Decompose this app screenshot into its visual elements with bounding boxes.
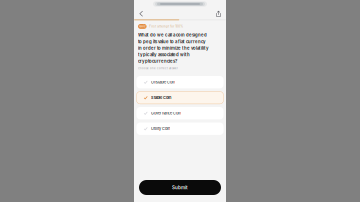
staticText: Utility Coin — [151, 126, 170, 131]
button[interactable]: Share — [215, 11, 222, 17]
staticText: Governance Coin — [151, 111, 181, 116]
button[interactable]: Submit — [139, 180, 221, 195]
button[interactable]: Governance Coin — [136, 107, 223, 119]
staticText: Quiz — [139, 25, 145, 28]
button[interactable]: Stable Coin — [136, 91, 223, 104]
staticText: Choose one correct answer — [138, 67, 178, 70]
staticText: Stable Coin — [151, 95, 171, 100]
staticText: Submit — [172, 185, 188, 190]
staticText: Unstable Coin — [151, 80, 175, 85]
staticText: What do we call a coin designed to peg i… — [138, 32, 209, 64]
button[interactable]: Unstable Coin — [136, 76, 223, 88]
button[interactable]: Utility Coin — [136, 122, 223, 135]
button[interactable]: Back — [138, 11, 145, 17]
staticText: First attempt for 100% — [149, 25, 183, 28]
